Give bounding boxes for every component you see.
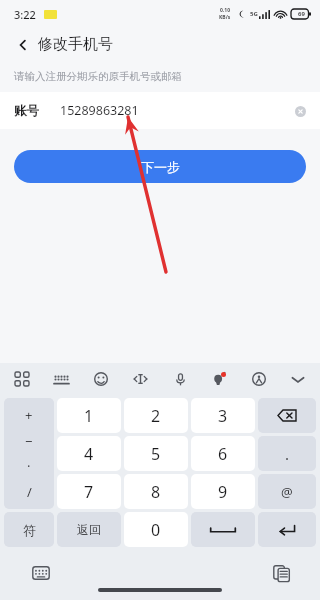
button[interactable]: Switch keyboard layout bbox=[48, 366, 74, 392]
button[interactable]: Symbols bbox=[4, 512, 54, 547]
button[interactable]: + − · / symbols bbox=[4, 398, 54, 509]
button[interactable]: Enter bbox=[258, 512, 316, 547]
staticText: 7 bbox=[84, 481, 94, 503]
button[interactable]: Back bbox=[11, 33, 35, 57]
staticText: − bbox=[25, 432, 33, 450]
staticText: 返回 bbox=[77, 522, 101, 537]
staticText: 3 bbox=[218, 405, 228, 427]
button[interactable]: Clear text bbox=[291, 102, 309, 120]
button[interactable]: 账号 bbox=[0, 92, 320, 129]
button[interactable]: Backspace bbox=[258, 398, 316, 433]
staticText: 账号 bbox=[14, 103, 39, 119]
button[interactable]: 4 bbox=[57, 436, 121, 471]
staticText: 4 bbox=[84, 443, 94, 465]
staticText: . bbox=[285, 444, 290, 464]
staticText: 修改手机号 bbox=[38, 35, 113, 54]
button[interactable]: 1 bbox=[57, 398, 121, 433]
button[interactable]: Emoji bbox=[88, 366, 114, 392]
staticText: 下一步 bbox=[141, 159, 180, 175]
button[interactable]: Clipboard bbox=[268, 560, 294, 586]
button[interactable]: 5 bbox=[124, 436, 188, 471]
button[interactable]: Space bbox=[191, 512, 255, 547]
button[interactable]: At sign bbox=[258, 474, 316, 509]
button[interactable]: Return bbox=[57, 512, 121, 547]
staticText: 1 bbox=[84, 405, 94, 427]
staticText: 9 bbox=[218, 481, 228, 503]
staticText: 3:22 bbox=[14, 7, 36, 22]
staticText: 2 bbox=[151, 405, 161, 427]
button[interactable]: 3 bbox=[191, 398, 255, 433]
staticText: 15289863281 bbox=[60, 102, 139, 119]
staticText: 69 bbox=[298, 10, 305, 18]
button[interactable]: Account bbox=[246, 366, 272, 392]
button[interactable]: 下一步 bbox=[14, 150, 306, 183]
staticText: @ bbox=[281, 483, 293, 501]
staticText: 0.10 bbox=[220, 7, 230, 14]
staticText: 请输入注册分期乐的原手机号或邮箱 bbox=[14, 70, 182, 83]
button[interactable]: Switch input method bbox=[28, 560, 54, 586]
button[interactable]: 7 bbox=[57, 474, 121, 509]
staticText: + bbox=[25, 406, 33, 424]
button[interactable]: 9 bbox=[191, 474, 255, 509]
button[interactable]: 2 bbox=[124, 398, 188, 433]
button[interactable]: Assistant bbox=[206, 366, 232, 392]
button[interactable]: Hide keyboard bbox=[285, 366, 311, 392]
staticText: 5G bbox=[250, 10, 258, 18]
staticText: 8 bbox=[151, 481, 161, 503]
button[interactable]: Voice input bbox=[167, 366, 193, 392]
button[interactable]: 6 bbox=[191, 436, 255, 471]
button[interactable]: 8 bbox=[124, 474, 188, 509]
staticText: 5 bbox=[151, 443, 161, 465]
staticText: 符 bbox=[23, 522, 36, 538]
staticText: KB/s bbox=[219, 14, 231, 21]
staticText: 0 bbox=[151, 519, 161, 541]
staticText: · bbox=[27, 457, 31, 475]
button[interactable]: Text editing bbox=[127, 366, 153, 392]
button[interactable]: Period bbox=[258, 436, 316, 471]
staticText: 6 bbox=[218, 443, 228, 465]
staticText: / bbox=[27, 483, 32, 501]
button[interactable]: Apps bbox=[9, 366, 35, 392]
button[interactable]: 0 bbox=[124, 512, 188, 547]
